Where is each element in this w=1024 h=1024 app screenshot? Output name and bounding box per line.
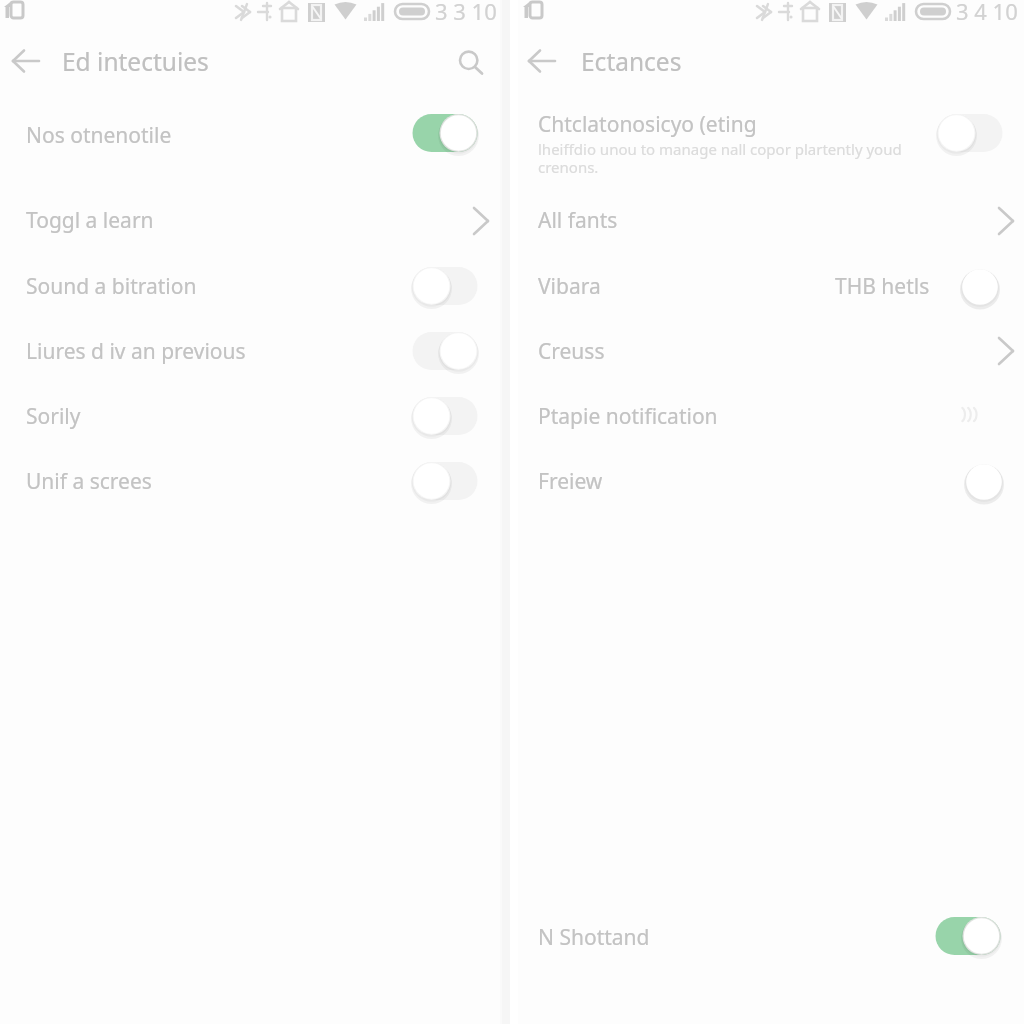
staticText: Ed intectuies <box>62 45 209 78</box>
staticText: All fants <box>538 206 618 235</box>
button[interactable]: Option <box>956 263 1004 311</box>
button[interactable]: Toggle <box>412 111 478 155</box>
button[interactable] <box>512 902 1024 972</box>
button[interactable] <box>0 254 512 318</box>
button[interactable]: Open <box>972 327 1020 375</box>
staticText: THB hetls <box>835 272 930 301</box>
button[interactable]: Sound level <box>942 398 990 434</box>
button[interactable] <box>512 384 1024 448</box>
button[interactable]: Toggle <box>412 459 478 503</box>
button[interactable]: Toggle <box>412 264 478 308</box>
staticText: Sorily <box>26 402 81 431</box>
button[interactable] <box>0 319 512 383</box>
button[interactable]: Open <box>972 197 1020 245</box>
button[interactable] <box>512 449 1024 513</box>
button[interactable] <box>512 188 1024 252</box>
button[interactable]: Back <box>3 37 49 83</box>
button[interactable]: Toggle <box>935 914 1001 958</box>
staticText: Freiew <box>538 467 603 496</box>
staticText: Chtclatonosicyo (eting <box>538 110 757 139</box>
staticText: 3 3 10 <box>435 0 497 26</box>
button[interactable] <box>0 384 512 448</box>
button[interactable] <box>0 101 512 169</box>
button[interactable]: Toggle <box>412 329 478 373</box>
button[interactable]: Open <box>447 197 495 245</box>
button[interactable] <box>512 100 1024 190</box>
button[interactable]: Back <box>519 37 565 83</box>
staticText: N Shottand <box>538 923 650 952</box>
button[interactable] <box>0 188 512 252</box>
button[interactable] <box>512 319 1024 383</box>
staticText: Unif a screes <box>26 467 152 496</box>
staticText: Toggl a learn <box>26 206 154 235</box>
button[interactable] <box>0 449 512 513</box>
button[interactable]: Search <box>445 38 491 84</box>
button[interactable] <box>512 254 1024 318</box>
staticText: Sound a bitration <box>26 272 197 301</box>
staticText: Vibara <box>538 272 601 301</box>
button[interactable]: Option <box>960 458 1008 506</box>
staticText: Nos otnenotile <box>26 121 172 150</box>
staticText: Liures d iv an previous <box>26 337 246 366</box>
staticText: Ectances <box>581 45 682 78</box>
staticText: Ptapie notification <box>538 402 718 431</box>
staticText: 3 4 10 <box>956 0 1018 26</box>
button[interactable]: Toggle <box>412 394 478 438</box>
staticText: lheiffdio unou to manage nall copor plar… <box>538 139 902 178</box>
staticText: Creuss <box>538 337 605 366</box>
button[interactable]: Toggle <box>937 111 1003 155</box>
